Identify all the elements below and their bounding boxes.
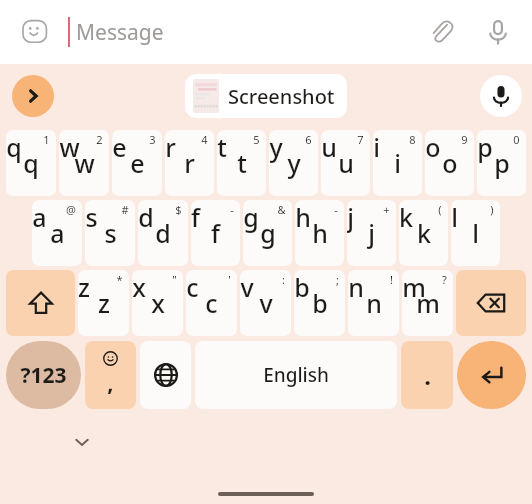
button[interactable]: Enter (457, 341, 526, 409)
staticText: , (107, 367, 114, 397)
button[interactable]: t (217, 130, 266, 196)
staticText: 8 (409, 132, 416, 147)
staticText: y (269, 130, 283, 164)
staticText: k (417, 216, 431, 250)
staticText: x (132, 270, 146, 304)
button[interactable]: Screenshot (185, 74, 347, 118)
staticText: + (383, 202, 390, 217)
staticText: Message (76, 18, 164, 47)
button[interactable]: i (373, 130, 422, 196)
staticText: h (295, 200, 311, 234)
staticText: r (165, 130, 176, 164)
button[interactable]: Change language (140, 341, 191, 409)
staticText: t (237, 146, 247, 180)
button[interactable]: q (6, 130, 56, 196)
button[interactable]: h (295, 200, 344, 266)
staticText: 4 (201, 132, 208, 147)
staticText: h (312, 216, 328, 250)
staticText: z (98, 286, 110, 320)
button[interactable]: Voice input (480, 14, 516, 50)
staticText: f (211, 216, 220, 250)
staticText: a (50, 216, 65, 250)
staticText: k (399, 200, 413, 234)
button[interactable]: f (191, 200, 240, 266)
staticText: English (263, 362, 329, 388)
button[interactable]: ?123 (6, 341, 81, 409)
button[interactable]: a (32, 200, 82, 266)
staticText: ! (390, 272, 393, 287)
button[interactable]: d (138, 200, 188, 266)
staticText: $ (175, 202, 182, 217)
button[interactable]: z (78, 270, 129, 336)
staticText: d (138, 200, 154, 234)
button[interactable]: x (132, 270, 183, 336)
button[interactable]: y (269, 130, 318, 196)
staticText: & (277, 202, 286, 217)
button[interactable]: English (195, 341, 397, 409)
button[interactable]: r (165, 130, 214, 196)
staticText: n (348, 270, 364, 304)
staticText: o (425, 130, 441, 164)
staticText: g (260, 216, 276, 250)
staticText: x (151, 286, 165, 320)
staticText: o (442, 146, 458, 180)
staticText: s (85, 200, 98, 234)
button[interactable]: Attach (424, 14, 460, 50)
staticText: : (282, 272, 285, 287)
button[interactable]: Backspace (456, 270, 526, 336)
button[interactable]: g (243, 200, 292, 266)
staticText: 3 (149, 132, 156, 147)
button[interactable]: s (85, 200, 135, 266)
staticText: @ (66, 202, 76, 217)
button[interactable]: Hide keyboard (64, 424, 100, 460)
staticText: b (312, 286, 328, 320)
button[interactable]: e (112, 130, 162, 196)
staticText: ( (438, 202, 442, 217)
button[interactable]: c (186, 270, 237, 336)
staticText: c (186, 270, 199, 304)
button[interactable]: w (59, 130, 109, 196)
button[interactable]: u (321, 130, 370, 196)
button[interactable]: o (425, 130, 474, 196)
staticText: m (416, 286, 440, 320)
staticText: c (205, 286, 218, 320)
staticText: # (121, 202, 129, 217)
button[interactable]: Emoji and comma (85, 341, 136, 409)
staticText: w (74, 146, 95, 180)
staticText: ) (490, 202, 494, 217)
staticText: f (191, 200, 200, 234)
button[interactable]: b (294, 270, 345, 336)
button[interactable]: Expand toolbar (12, 75, 54, 117)
button[interactable]: Voice typing (480, 75, 522, 117)
button[interactable]: j (347, 200, 396, 266)
staticText: m (402, 270, 426, 304)
staticText: j (368, 216, 375, 250)
staticText: 5 (253, 132, 260, 147)
staticText: . (424, 359, 431, 392)
staticText: ?123 (20, 361, 67, 390)
button[interactable]: l (451, 200, 500, 266)
button[interactable]: k (399, 200, 448, 266)
button[interactable]: v (240, 270, 291, 336)
button[interactable]: Shift (6, 270, 75, 336)
staticText: l (451, 200, 458, 234)
button[interactable]: Stickers (18, 15, 52, 49)
staticText: l (472, 216, 479, 250)
button[interactable]: p (477, 130, 526, 196)
staticText: - (334, 202, 338, 217)
staticText: e (112, 130, 127, 164)
staticText: Screenshot (228, 83, 335, 110)
button[interactable]: . (401, 341, 453, 409)
staticText: z (78, 270, 90, 304)
staticText: u (338, 146, 354, 180)
button[interactable]: n (348, 270, 399, 336)
staticText: ; (336, 272, 339, 287)
staticText: " (172, 272, 177, 287)
staticText: y (287, 146, 301, 180)
button[interactable]: m (402, 270, 453, 336)
staticText: ? (442, 272, 447, 287)
staticText: ' (228, 272, 231, 287)
staticText: p (477, 130, 493, 164)
staticText: 0 (513, 132, 520, 147)
staticText: w (59, 130, 80, 164)
